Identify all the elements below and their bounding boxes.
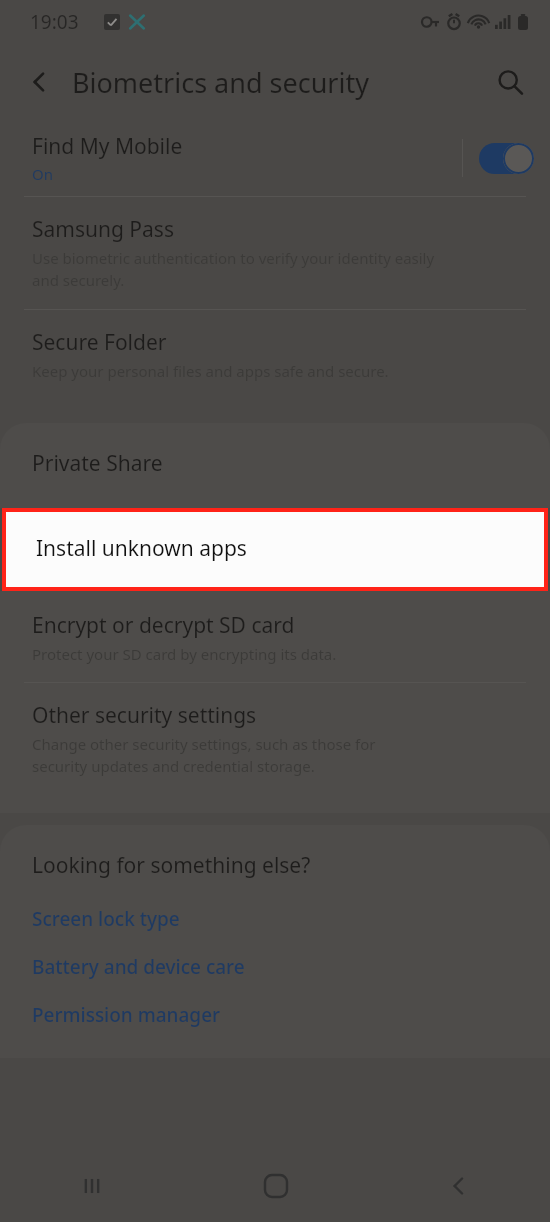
staticText: Find My Mobile — [32, 132, 183, 161]
staticText: Change other security settings, such as … — [32, 734, 376, 777]
button[interactable]: Back — [16, 58, 64, 106]
button[interactable]: Other security settings — [0, 683, 550, 795]
button[interactable]: Permission manager — [32, 996, 221, 1034]
button[interactable]: Install unknown apps — [6, 512, 544, 587]
staticText: Keep your personal files and apps safe a… — [32, 361, 389, 381]
staticText: Private Share — [32, 449, 163, 478]
button[interactable]: Find My Mobile toggle — [479, 143, 534, 174]
button[interactable]: Private Share — [0, 423, 550, 508]
button[interactable]: Encrypt or decrypt SD card — [0, 591, 550, 682]
button[interactable]: Battery and device care — [32, 948, 245, 986]
staticText: Protect your SD card by encrypting its d… — [32, 644, 337, 664]
staticText: Install unknown apps — [36, 534, 247, 563]
button[interactable]: Screen lock type — [32, 900, 180, 938]
staticText: Secure Folder — [32, 328, 167, 357]
button[interactable]: Secure Folder — [0, 310, 550, 399]
staticText: On — [32, 164, 53, 184]
staticText: Use biometric authentication to verify y… — [32, 248, 435, 291]
staticText: 19:03 — [30, 9, 79, 35]
staticText: Samsung Pass — [32, 215, 174, 244]
staticText: Other security settings — [32, 701, 257, 730]
staticText: Biometrics and security — [72, 64, 369, 101]
button[interactable]: Find My Mobile — [0, 120, 550, 196]
button[interactable]: Samsung Pass — [0, 197, 550, 309]
staticText: Looking for something else? — [32, 851, 311, 880]
staticText: Encrypt or decrypt SD card — [32, 611, 295, 640]
button[interactable]: Search — [486, 58, 534, 106]
